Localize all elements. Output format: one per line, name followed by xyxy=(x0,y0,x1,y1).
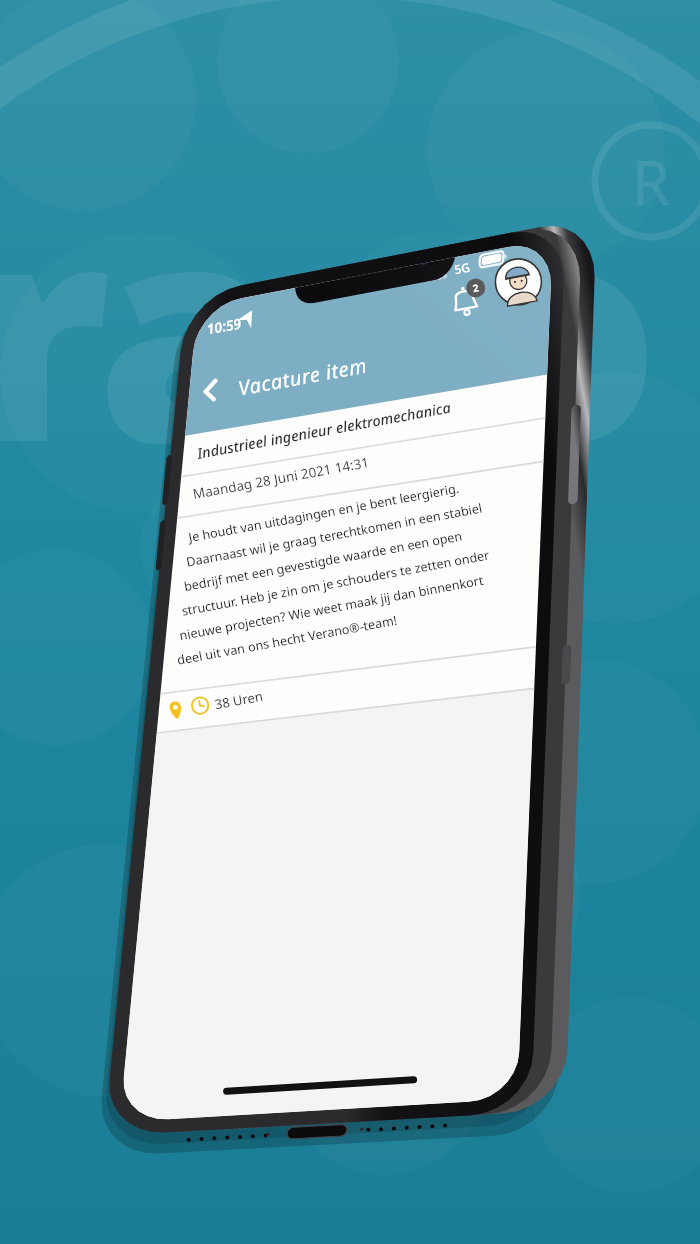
button[interactable]: Notifications xyxy=(446,283,494,331)
button[interactable]: Back xyxy=(196,350,240,396)
button[interactable] xyxy=(0,0,700,1244)
button[interactable] xyxy=(190,392,520,442)
button[interactable]: Profile xyxy=(490,273,542,325)
button[interactable] xyxy=(176,620,516,672)
